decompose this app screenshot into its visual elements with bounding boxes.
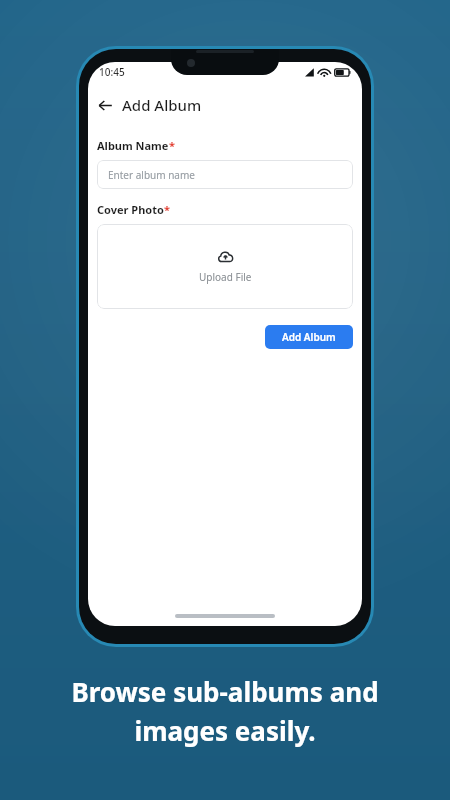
- staticText: Cover Photo: [97, 202, 164, 217]
- staticText: *: [164, 202, 170, 217]
- staticText: Album Name: [97, 138, 169, 153]
- button[interactable]: Enter album name: [97, 160, 353, 189]
- staticText: *: [169, 138, 175, 153]
- button[interactable]: Upload File: [97, 224, 353, 309]
- staticText: Enter album name: [108, 168, 195, 182]
- staticText: Add Album: [282, 330, 336, 344]
- staticText: Add Album: [122, 95, 202, 115]
- staticText: 10:45: [99, 65, 125, 79]
- button[interactable]: Back: [88, 92, 122, 118]
- staticText: Upload File: [199, 270, 252, 284]
- button[interactable]: Add Album: [265, 325, 353, 349]
- staticText: images easily.: [134, 713, 316, 748]
- staticText: Browse sub-albums and: [71, 674, 379, 709]
